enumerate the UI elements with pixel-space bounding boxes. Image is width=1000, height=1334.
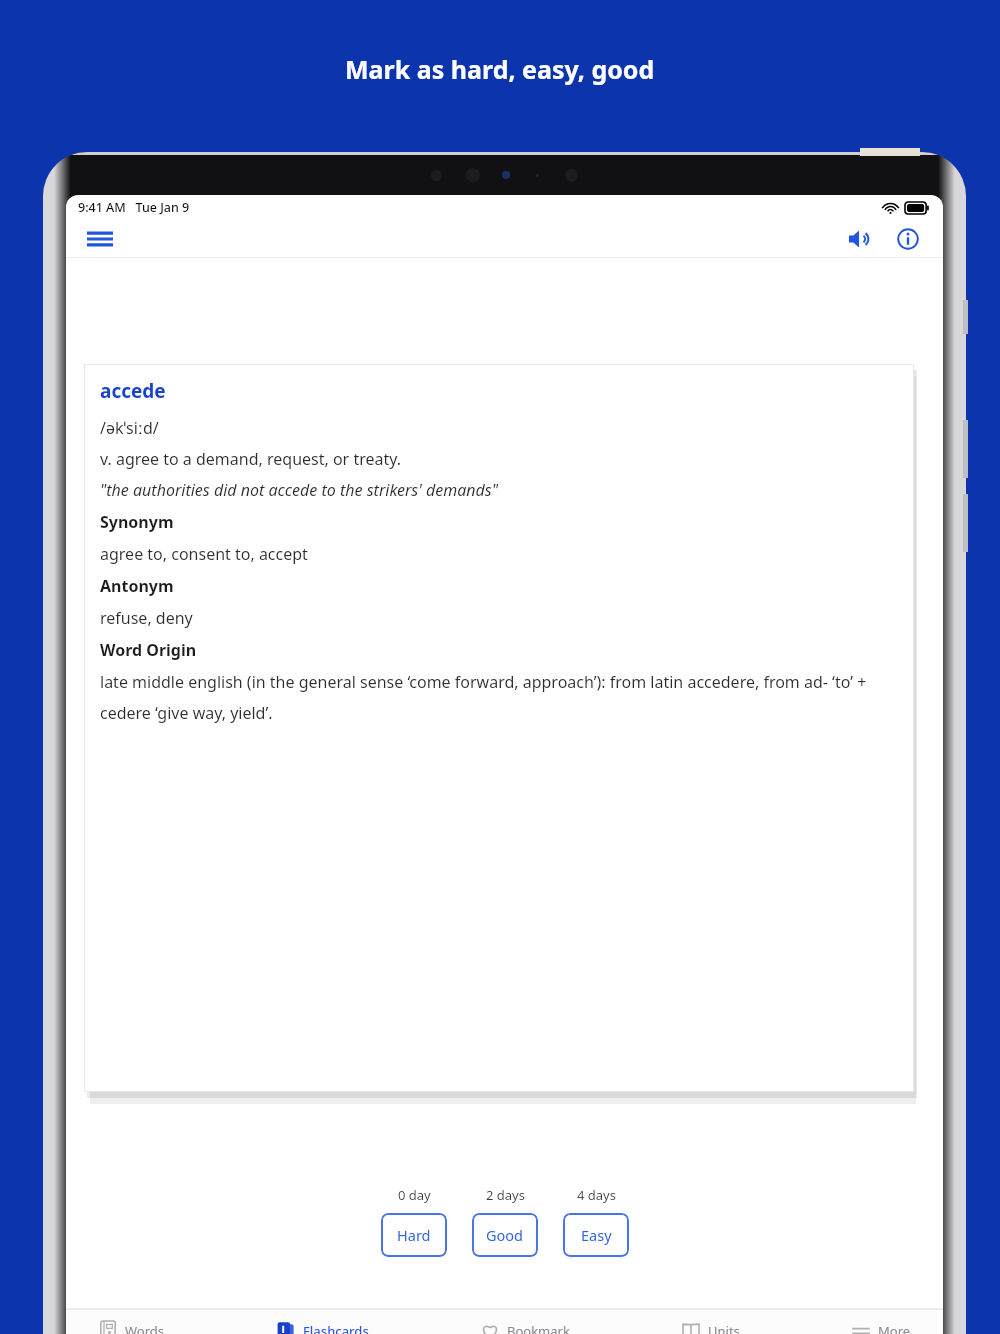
staticText: 2 days — [486, 1186, 525, 1204]
staticText: v. agree to a demand, request, or treaty… — [100, 448, 402, 470]
staticText: "the authorities did not accede to the s… — [100, 479, 498, 501]
staticText: agree to, consent to, accept — [100, 543, 308, 565]
staticText: Word Origin — [100, 639, 197, 661]
staticText: Bookmark — [507, 1322, 570, 1334]
button[interactable]: Words — [92, 1317, 171, 1334]
staticText: Mark as hard, easy, good — [345, 52, 655, 86]
staticText: Good — [486, 1225, 524, 1245]
button[interactable]: Easy — [563, 1213, 629, 1257]
button[interactable]: Units — [675, 1317, 746, 1334]
button[interactable]: Menu — [80, 223, 120, 255]
staticText: Words — [125, 1322, 165, 1334]
button[interactable]: More — [845, 1317, 917, 1334]
staticText: Units — [708, 1322, 740, 1334]
staticText: late middle english (in the general sens… — [100, 671, 898, 723]
staticText: Easy — [581, 1225, 612, 1245]
staticText: 9:41 AM Tue Jan 9 — [78, 199, 190, 216]
staticText: 0 day — [398, 1186, 431, 1204]
staticText: Synonym — [100, 511, 174, 533]
staticText: Antonym — [100, 575, 174, 597]
button[interactable]: Pronounce — [839, 222, 881, 256]
button[interactable]: accede — [84, 364, 914, 1092]
staticText: More — [878, 1322, 911, 1334]
staticText: 4 days — [577, 1186, 616, 1204]
staticText: Hard — [397, 1225, 431, 1245]
button[interactable]: Hard — [381, 1213, 447, 1257]
button[interactable]: Good — [472, 1213, 538, 1257]
staticText: /əkˈsiːd/ — [100, 417, 159, 439]
staticText: refuse, deny — [100, 607, 193, 629]
button[interactable]: Flashcards — [270, 1317, 375, 1334]
button[interactable]: Bookmark — [474, 1317, 576, 1334]
staticText: Flashcards — [303, 1322, 369, 1334]
staticText: accede — [100, 378, 166, 404]
button[interactable]: Info — [887, 222, 929, 256]
